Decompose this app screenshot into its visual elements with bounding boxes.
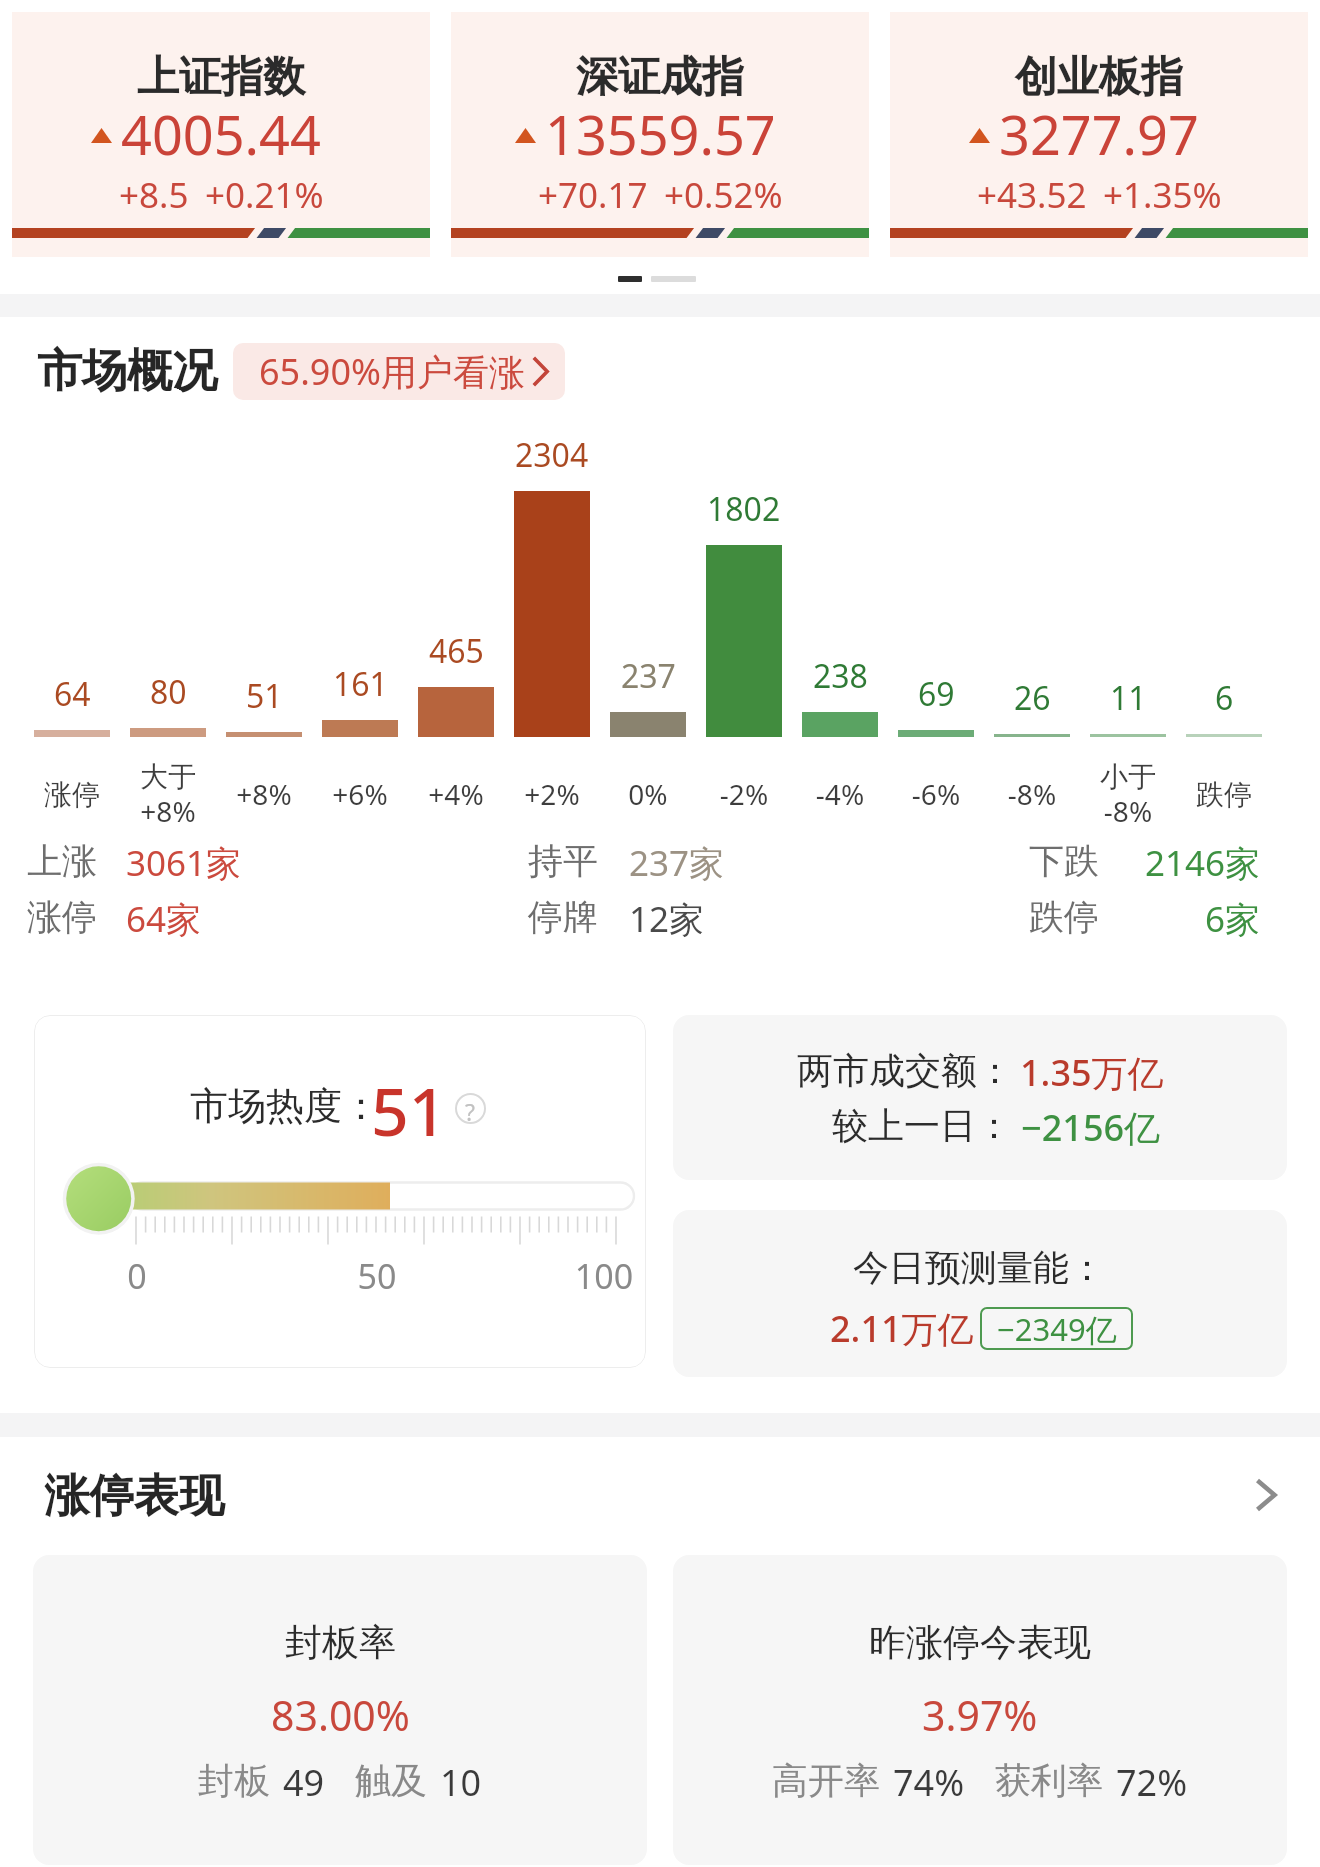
- staticText: 3.97%: [922, 1687, 1038, 1743]
- staticText: 创业板指: [1015, 51, 1183, 104]
- staticText: 2146家: [1145, 839, 1261, 887]
- staticText: 今日预测量能：: [853, 1245, 1105, 1290]
- button[interactable]: 两市成交额：: [673, 1015, 1287, 1180]
- staticText: 49: [283, 1758, 325, 1807]
- staticText: 34: [126, 1253, 148, 1345]
- staticText: 80: [150, 670, 187, 714]
- staticText: -2%: [696, 775, 792, 813]
- staticText: 4005.44: [121, 97, 321, 171]
- staticText: -6%: [888, 775, 984, 813]
- other: More: [1256, 1479, 1276, 1511]
- staticText: 持平: [528, 839, 598, 883]
- staticText: 高开率: [772, 1758, 880, 1803]
- staticText: 跌停: [1176, 777, 1272, 812]
- staticText: 64: [54, 672, 91, 716]
- staticText: 10: [440, 1758, 482, 1807]
- staticText: 72%: [1116, 1758, 1188, 1807]
- button[interactable]: 创业板指: [890, 12, 1308, 257]
- staticText: 封板率: [285, 1619, 396, 1666]
- staticText: 3277.97: [999, 97, 1199, 171]
- staticText: +4%: [408, 775, 504, 813]
- staticText: 3061家: [126, 839, 242, 887]
- staticText: +8%: [216, 775, 312, 813]
- staticText: 涨停: [24, 777, 120, 812]
- button[interactable]: 上证指数: [12, 12, 430, 257]
- staticText: 83.00%: [271, 1687, 410, 1743]
- staticText: 12家: [629, 895, 705, 943]
- staticText: 1.35万亿: [1020, 1048, 1164, 1097]
- staticText: +0.21%: [205, 171, 324, 219]
- staticText: 停牌: [528, 895, 598, 939]
- staticText: 两市成交额：: [797, 1048, 1013, 1093]
- staticText: 上涨: [27, 839, 97, 883]
- button[interactable]: 封板率: [33, 1555, 647, 1865]
- staticText: 跌停: [1029, 895, 1099, 939]
- staticText: 封板: [198, 1758, 270, 1803]
- staticText: 65.90%用户看涨: [259, 347, 525, 396]
- staticText: 昨涨停今表现: [869, 1619, 1091, 1666]
- staticText: −2156亿: [1021, 1103, 1161, 1152]
- staticText: 0: [126, 1253, 148, 1299]
- staticText: 1802: [707, 487, 781, 531]
- staticText: 26: [1014, 676, 1051, 720]
- button[interactable]: 65.90%用户看涨: [233, 343, 565, 400]
- staticText: 获利率: [995, 1758, 1103, 1803]
- staticText: 深证成指: [576, 51, 744, 104]
- staticText: +8.5: [119, 171, 189, 219]
- staticText: 51: [371, 1065, 447, 1155]
- staticText: -4%: [792, 775, 888, 813]
- staticText: +70.17: [538, 171, 648, 219]
- staticText: -8%: [984, 775, 1080, 813]
- staticText: 市场概况: [37, 343, 217, 400]
- staticText: 237: [621, 654, 676, 698]
- staticText: 161: [333, 662, 388, 706]
- staticText: 涨停: [27, 895, 97, 939]
- staticText: 13559.57: [545, 97, 776, 171]
- button[interactable]: 市场热度：: [34, 1015, 646, 1368]
- staticText: 2.11万亿: [830, 1304, 974, 1353]
- staticText: +1.35%: [1103, 171, 1222, 219]
- staticText: 上证指数: [137, 51, 305, 104]
- staticText: 2304: [515, 433, 589, 477]
- button[interactable]: 深证成指: [451, 12, 869, 257]
- button[interactable]: 涨停表现: [0, 1456, 1320, 1537]
- button[interactable]: 昨涨停今表现: [673, 1555, 1287, 1865]
- staticText: 6家: [1205, 895, 1261, 943]
- staticText: 465: [429, 629, 484, 673]
- staticText: 小于 -8%: [1080, 759, 1176, 830]
- staticText: −2349亿: [997, 1308, 1117, 1350]
- staticText: 较上一日：: [832, 1103, 1012, 1148]
- staticText: 涨停表现: [44, 1468, 224, 1525]
- staticText: 69: [918, 672, 955, 716]
- staticText: 74%: [893, 1758, 965, 1807]
- staticText: ?: [465, 1096, 475, 1127]
- staticText: 51: [246, 674, 283, 718]
- staticText: +6%: [312, 775, 408, 813]
- staticText: 6: [1215, 676, 1234, 720]
- staticText: +43.52: [977, 171, 1087, 219]
- staticText: 238: [813, 654, 868, 698]
- staticText: 50: [355, 1253, 399, 1299]
- staticText: 237家: [629, 839, 725, 887]
- staticText: 大于 +8%: [120, 759, 216, 830]
- staticText: 市场热度：: [190, 1082, 380, 1130]
- button[interactable]: 今日预测量能：: [673, 1210, 1287, 1377]
- staticText: +0.52%: [664, 171, 783, 219]
- staticText: 下跌: [1029, 839, 1099, 883]
- staticText: 64家: [126, 895, 202, 943]
- staticText: 0%: [600, 775, 696, 813]
- staticText: +2%: [504, 775, 600, 813]
- staticText: 11: [1110, 676, 1147, 720]
- staticText: 触及: [355, 1758, 427, 1803]
- staticText: 100: [571, 1253, 637, 1299]
